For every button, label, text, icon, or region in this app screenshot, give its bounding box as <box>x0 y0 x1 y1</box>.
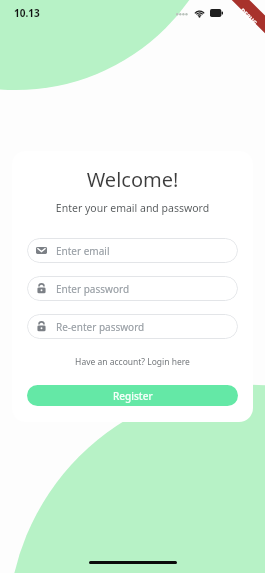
other: Password <box>36 321 47 332</box>
staticText: Have an account? Login here <box>75 356 190 368</box>
button[interactable]: Password <box>27 314 238 339</box>
staticText: DEBUG <box>238 7 259 27</box>
button[interactable]: Email <box>27 238 238 263</box>
button[interactable]: Have an account? Login here <box>27 354 238 370</box>
staticText: Enter your email and password <box>27 201 238 215</box>
staticText: Enter email <box>56 244 110 258</box>
other: Email <box>36 245 47 256</box>
button[interactable]: Register <box>27 385 238 406</box>
other: Password <box>36 283 47 294</box>
button[interactable]: Password <box>27 276 238 301</box>
staticText: 10.13 <box>14 6 40 20</box>
staticText: Re-enter password <box>56 320 145 334</box>
staticText: Enter password <box>56 282 130 296</box>
staticText: Register <box>113 389 153 403</box>
staticText: Welcome! <box>27 166 238 193</box>
